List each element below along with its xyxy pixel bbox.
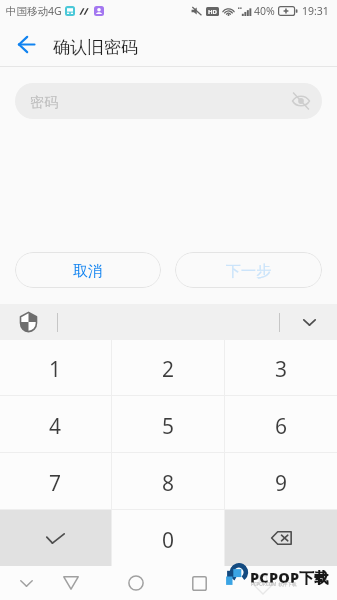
staticText: 确认旧密码 bbox=[53, 37, 138, 58]
staticText: 7 bbox=[49, 469, 62, 498]
button[interactable]: 5 bbox=[112, 396, 224, 452]
button[interactable]: Home bbox=[122, 569, 150, 597]
button[interactable]: Secure input bbox=[14, 308, 42, 336]
button[interactable]: 1 bbox=[0, 340, 111, 395]
staticText: 3 bbox=[275, 355, 288, 384]
button[interactable]: Hide keyboard bbox=[12, 569, 40, 597]
button[interactable]: 9 bbox=[225, 453, 337, 509]
button[interactable]: Recents bbox=[185, 569, 213, 597]
staticText: 2 bbox=[162, 355, 175, 384]
button[interactable]: 2 bbox=[112, 340, 224, 395]
staticText: 下一步 bbox=[226, 262, 271, 281]
button[interactable]: 取消 bbox=[15, 252, 161, 288]
button[interactable]: Hide keyboard bbox=[295, 308, 323, 336]
staticText: 5 bbox=[162, 412, 175, 441]
button[interactable]: 密码 bbox=[15, 83, 322, 119]
button[interactable]: 6 bbox=[225, 396, 337, 452]
button[interactable]: 下一步 bbox=[175, 252, 322, 288]
staticText: 0 bbox=[162, 526, 175, 555]
staticText: 4 bbox=[49, 412, 62, 441]
staticText: 40% bbox=[254, 4, 275, 18]
staticText: 中国移动4G bbox=[6, 4, 62, 18]
button[interactable]: 0 bbox=[112, 510, 224, 566]
staticText: 8 bbox=[162, 469, 175, 498]
button[interactable]: Show password bbox=[288, 88, 314, 114]
button[interactable]: 3 bbox=[225, 340, 337, 395]
button[interactable]: Confirm bbox=[0, 510, 111, 566]
button[interactable]: Back bbox=[11, 29, 42, 60]
staticText: 6 bbox=[275, 412, 288, 441]
staticText: PCPOP下载 bbox=[250, 567, 329, 587]
button[interactable]: 8 bbox=[112, 453, 224, 509]
staticText: 取消 bbox=[73, 262, 103, 281]
button[interactable]: 4 bbox=[0, 396, 111, 452]
staticText: HD bbox=[208, 8, 217, 16]
staticText: 密码 bbox=[30, 94, 58, 112]
staticText: 9 bbox=[275, 469, 288, 498]
button[interactable]: Back bbox=[57, 569, 85, 597]
staticText: PCPOP.COM 软件下载 bbox=[251, 581, 297, 587]
staticText: 1 bbox=[49, 355, 62, 384]
button[interactable]: Backspace bbox=[225, 510, 337, 566]
staticText: 19:31 bbox=[302, 4, 329, 18]
button[interactable]: 7 bbox=[0, 453, 111, 509]
